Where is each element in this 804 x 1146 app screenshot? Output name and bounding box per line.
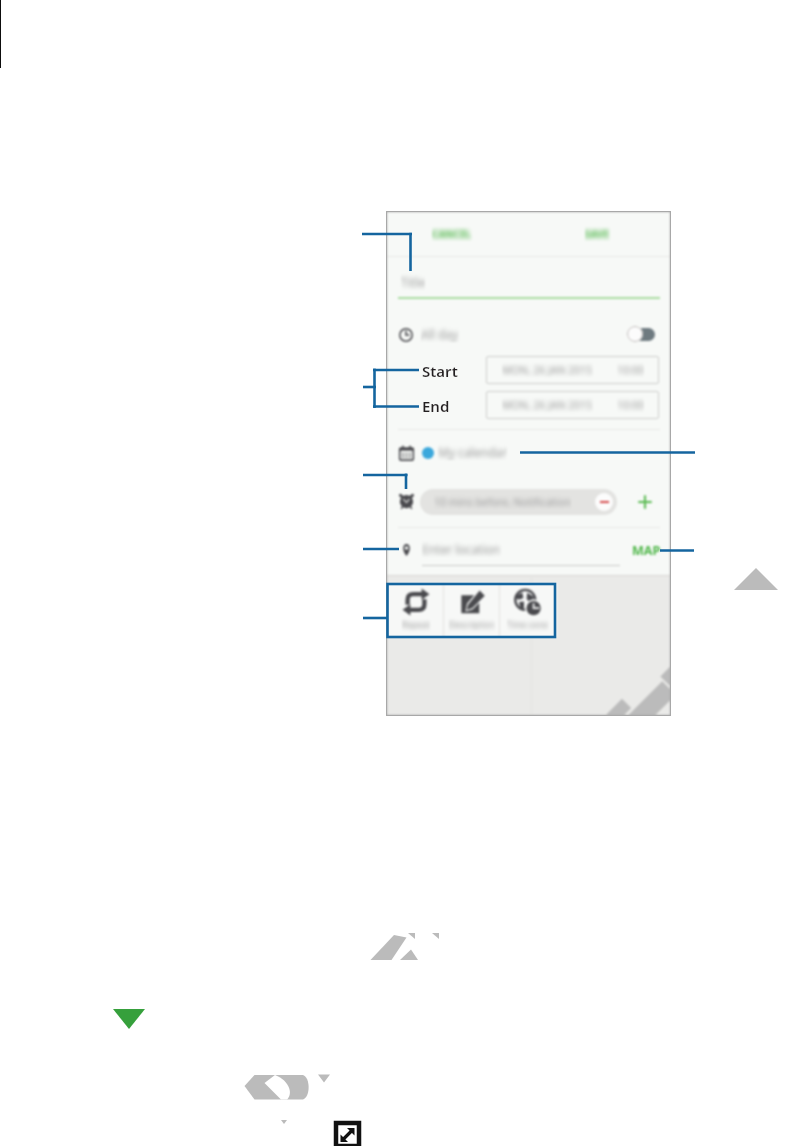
button[interactable]: 10 mins before, Notification (420, 489, 617, 515)
staticText: Start (422, 361, 458, 381)
staticText: MON, 26 JAN 2015 (502, 398, 593, 412)
button[interactable]: CANCEL (432, 227, 472, 241)
staticText: Enter location (422, 541, 501, 557)
staticText: My calendar (438, 444, 507, 460)
staticText: Title (401, 274, 425, 290)
staticText: 10:00 (617, 363, 644, 377)
button[interactable]: MAP (632, 542, 661, 559)
button[interactable]: Time zone (500, 583, 555, 637)
staticText: Time zone (507, 619, 549, 631)
button[interactable]: Description (444, 583, 499, 637)
button[interactable]: Add reminder (637, 494, 653, 510)
staticText: All day (421, 326, 459, 342)
button[interactable]: MON, 26 JAN 2015 (486, 356, 659, 384)
staticText: End (422, 396, 450, 416)
button[interactable]: Remove reminder (595, 493, 613, 511)
staticText: MON, 26 JAN 2015 (502, 363, 593, 377)
button[interactable]: All day toggle (627, 326, 655, 342)
button[interactable]: SAVE (585, 227, 610, 241)
staticText: 10:00 (617, 398, 644, 412)
button[interactable]: Repeat (388, 583, 443, 637)
staticText: Description (449, 619, 495, 631)
button[interactable]: MON, 26 JAN 2015 (486, 391, 659, 419)
staticText: 10 mins before, Notification (434, 495, 571, 509)
staticText: Repeat (402, 619, 430, 631)
